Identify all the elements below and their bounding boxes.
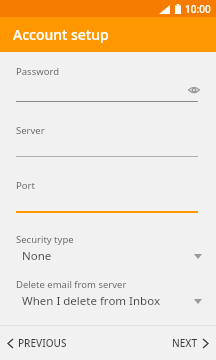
- staticText: Delete email from server: [16, 278, 127, 291]
- staticText: Port: [16, 179, 35, 192]
- button[interactable]: PREVIOUS: [0, 329, 75, 357]
- button[interactable]: Server: [0, 124, 216, 157]
- staticText: Password: [16, 65, 59, 78]
- staticText: Account setup: [13, 25, 109, 44]
- button[interactable]: NEXT: [164, 329, 216, 357]
- staticText: When I delete from Inbox: [22, 293, 194, 309]
- staticText: Security type: [16, 233, 74, 246]
- staticText: None: [22, 248, 194, 264]
- staticText: NEXT: [172, 336, 198, 350]
- button[interactable]: Show password: [187, 83, 201, 97]
- staticText: PREVIOUS: [18, 336, 67, 350]
- button[interactable]: Delete email from server: [0, 278, 216, 309]
- button[interactable]: Security type: [0, 233, 216, 264]
- button[interactable]: Port: [0, 179, 216, 213]
- staticText: Server: [16, 124, 45, 137]
- staticText: 10:00: [185, 2, 211, 16]
